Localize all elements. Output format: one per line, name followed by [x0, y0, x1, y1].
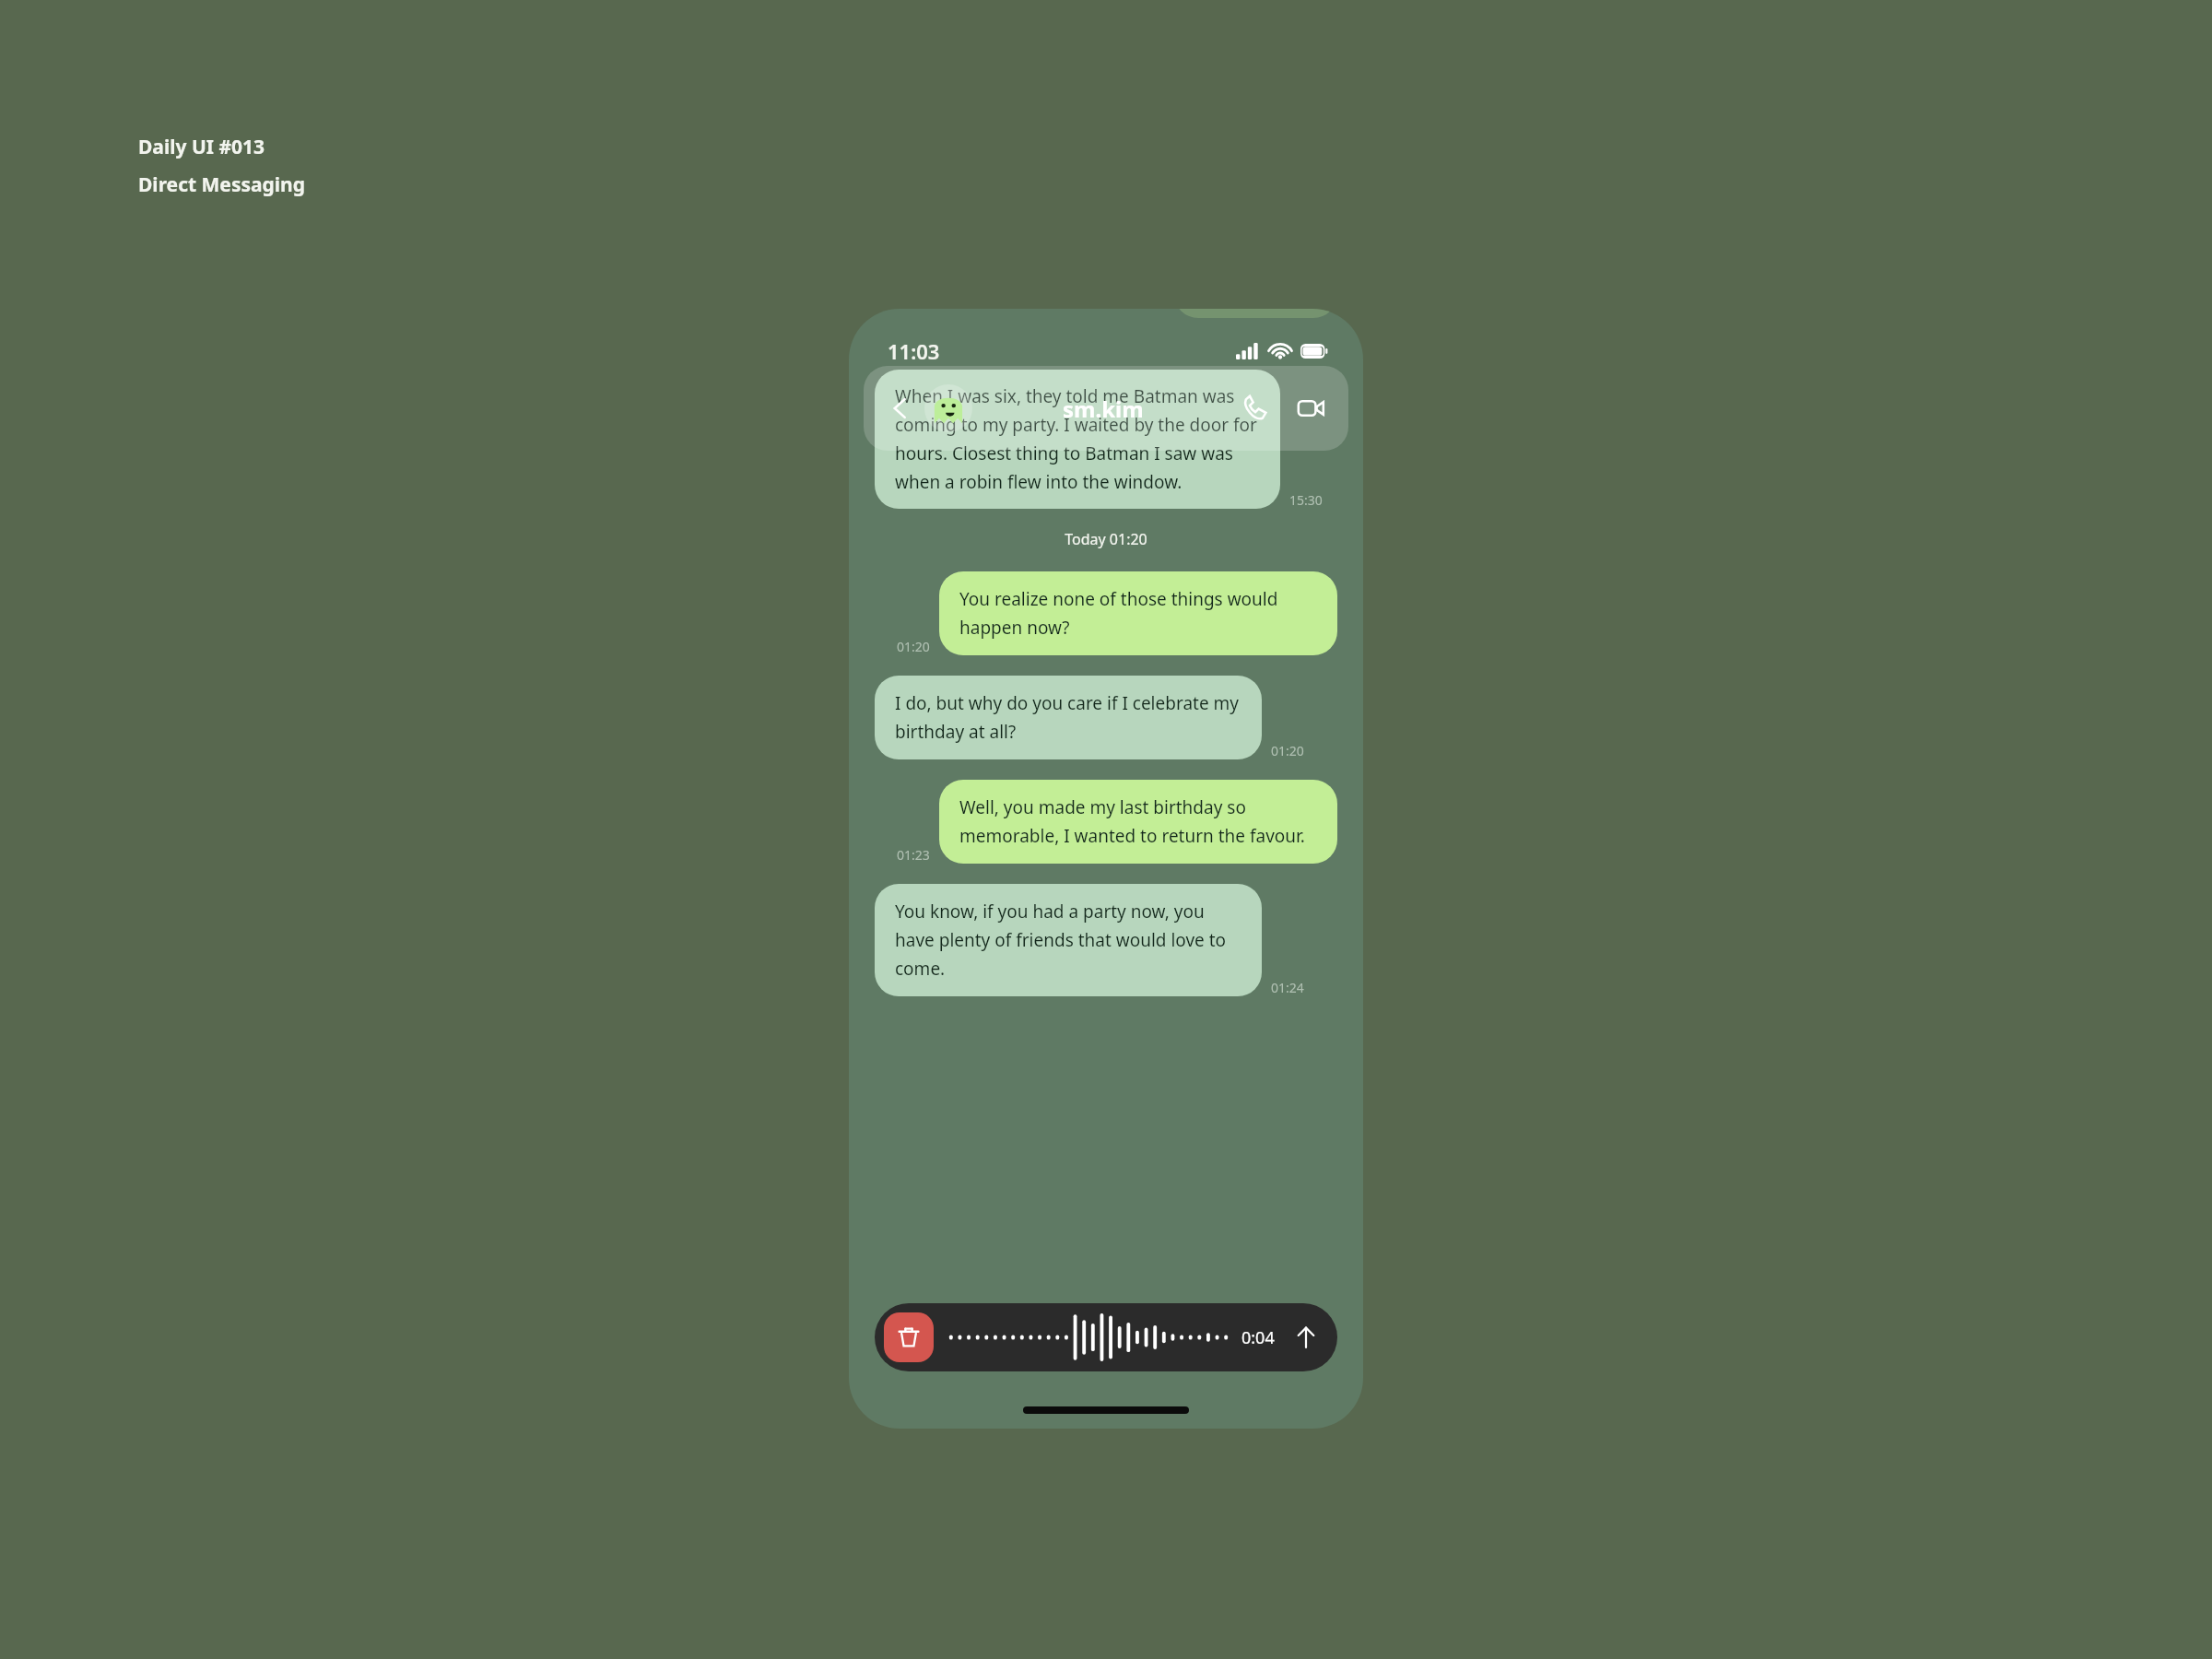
staticText: You realize none of those things would h… — [959, 587, 1317, 640]
staticText: 01:20 — [1271, 742, 1304, 759]
staticText: 01:23 — [897, 846, 930, 864]
button[interactable]: Profile — [924, 384, 972, 432]
staticText: 01:24 — [1271, 979, 1304, 996]
button[interactable]: You know, if you had a party now, you ha… — [875, 884, 1262, 996]
staticText: When I was six, they told me Batman was … — [895, 384, 1260, 494]
staticText: sm.kim — [1063, 394, 1144, 424]
button[interactable]: I do, but why do you care if I celebrate… — [875, 676, 1262, 759]
button[interactable]: Call — [1234, 387, 1277, 429]
staticText: 0:04 — [1241, 1326, 1275, 1349]
button[interactable]: You realize none of those things would h… — [939, 571, 1337, 655]
staticText: 11:03 — [888, 337, 940, 365]
button[interactable]: Well, you made my last birthday so memor… — [939, 780, 1337, 864]
staticText: 01:20 — [897, 638, 930, 655]
staticText: Daily UI #013 — [138, 134, 265, 160]
staticText: 15:30 — [1289, 491, 1323, 509]
button[interactable]: Back — [880, 388, 921, 429]
button[interactable]: When I was six, they told me Batman was … — [875, 370, 1280, 509]
button[interactable]: Delete recording — [875, 1303, 1337, 1371]
button[interactable]: No. I missed it. — [1174, 309, 1337, 318]
staticText: Well, you made my last birthday so memor… — [959, 795, 1317, 848]
staticText: Today 01:20 — [875, 529, 1337, 549]
staticText: You know, if you had a party now, you ha… — [895, 900, 1241, 981]
staticText: Direct Messaging — [138, 171, 306, 198]
staticText: I do, but why do you care if I celebrate… — [895, 691, 1241, 744]
button[interactable]: Video call — [1289, 387, 1332, 429]
button[interactable]: Send — [1288, 1319, 1324, 1356]
button[interactable]: Delete recording — [884, 1312, 934, 1362]
